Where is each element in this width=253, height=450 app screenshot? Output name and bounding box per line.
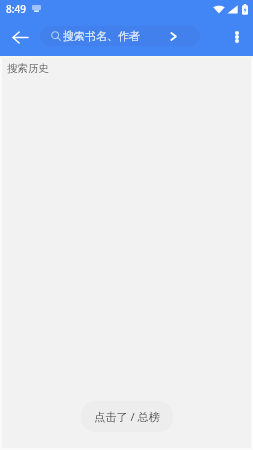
button[interactable]: More options <box>221 21 253 53</box>
button[interactable]: 点击了 / 总榜 <box>81 401 173 432</box>
button[interactable]: Back <box>4 21 36 53</box>
button[interactable]: 搜索书名、作者 <box>40 26 200 46</box>
staticText: 点击了 / 总榜 <box>94 409 160 424</box>
staticText: 搜索历史 <box>7 62 49 75</box>
staticText: 8:49 <box>6 2 26 16</box>
staticText: 搜索书名、作者 <box>63 29 140 43</box>
